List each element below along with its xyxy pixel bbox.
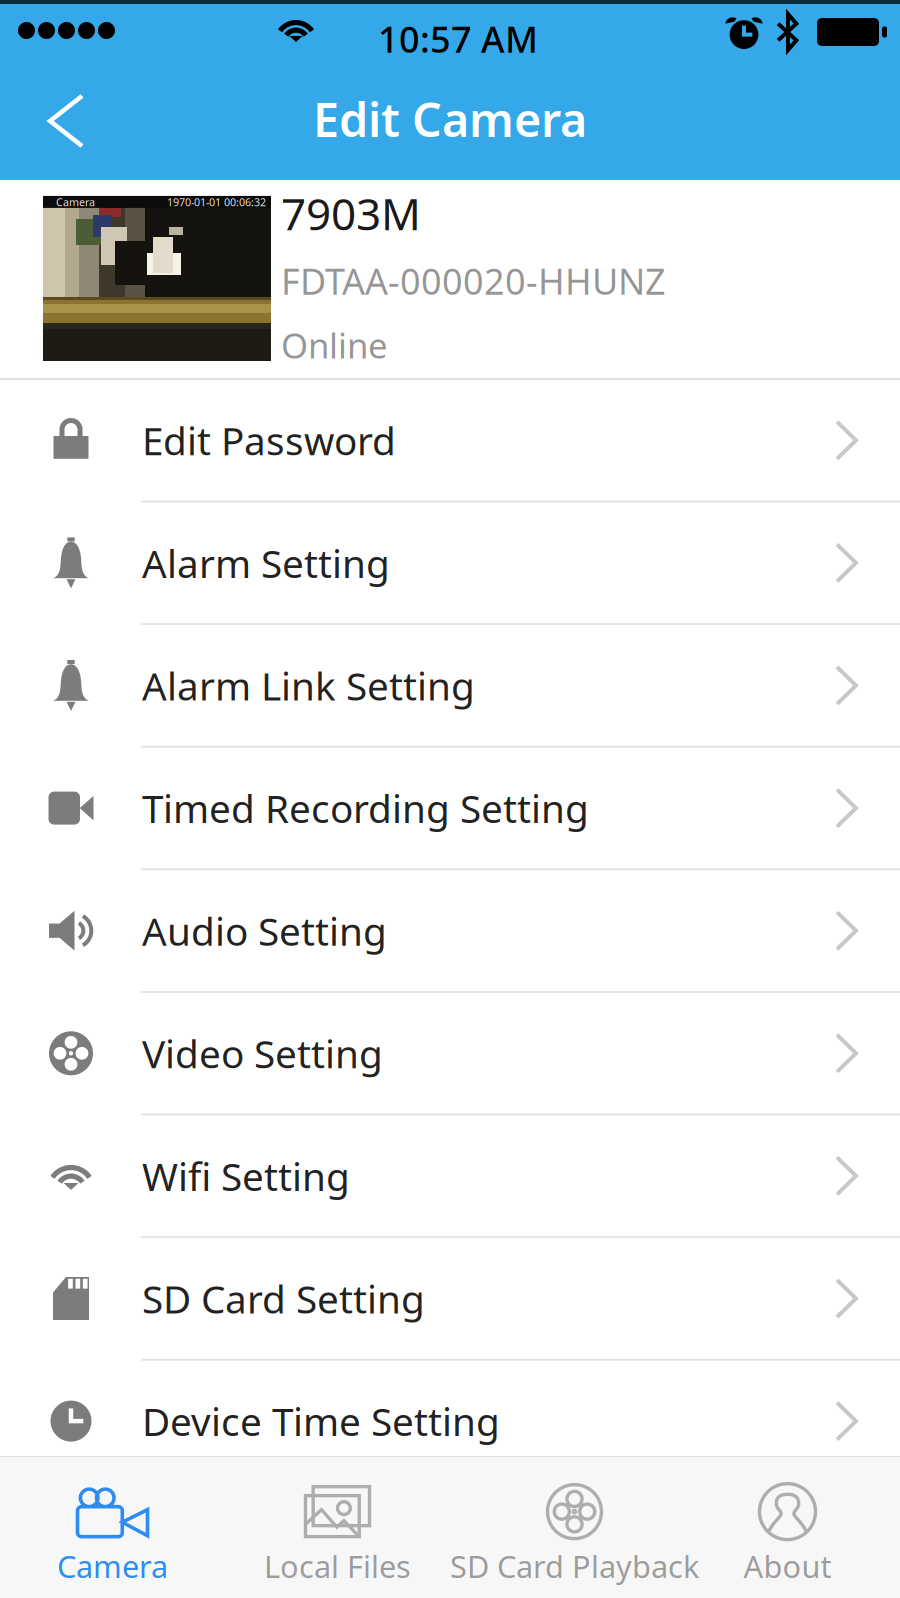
staticText: 1970-01-01 00:06:32 [167, 195, 266, 209]
staticText: Edit Camera [313, 88, 587, 150]
button[interactable]: About [675, 1457, 900, 1598]
staticText: Wifi Setting [142, 1150, 350, 1201]
staticText: Timed Recording Setting [142, 782, 589, 834]
button[interactable]: Edit Password [0, 380, 900, 503]
staticText: Alarm Link Setting [142, 660, 475, 711]
staticText: Video Setting [142, 1028, 383, 1079]
staticText: SD Card Playback [450, 1546, 699, 1586]
button[interactable]: Device Time Setting [0, 1361, 900, 1483]
button[interactable]: Alarm Link Setting [0, 625, 900, 748]
staticText: Device Time Setting [142, 1395, 500, 1447]
staticText: Local Files [264, 1546, 411, 1586]
staticText: SD Card Setting [142, 1273, 425, 1324]
staticText: 10:57 AM [378, 15, 538, 63]
button[interactable]: Timed Recording Setting [0, 748, 900, 870]
staticText: Alarm Setting [142, 537, 390, 588]
button[interactable]: Back [0, 66, 126, 176]
staticText: Camera [56, 195, 95, 209]
staticText: 7903M [281, 184, 421, 242]
staticText: Audio Setting [142, 905, 387, 956]
button[interactable]: Audio Setting [0, 870, 900, 993]
staticText: Edit Password [142, 415, 396, 466]
button[interactable]: Wifi Setting [0, 1116, 900, 1238]
button[interactable]: SD Card Setting [0, 1238, 900, 1361]
button[interactable]: SD Card Playback [450, 1457, 675, 1598]
staticText: Camera [57, 1546, 168, 1586]
button[interactable]: Alarm Setting [0, 503, 900, 625]
staticText: FDTAA-000020-HHUNZ [281, 257, 666, 305]
button[interactable]: Video Setting [0, 993, 900, 1116]
button[interactable]: Camera [0, 180, 900, 380]
staticText: About [743, 1546, 831, 1586]
button[interactable]: Camera [0, 1457, 225, 1598]
staticText: Online [281, 322, 388, 368]
button[interactable]: Local Files [225, 1457, 450, 1598]
